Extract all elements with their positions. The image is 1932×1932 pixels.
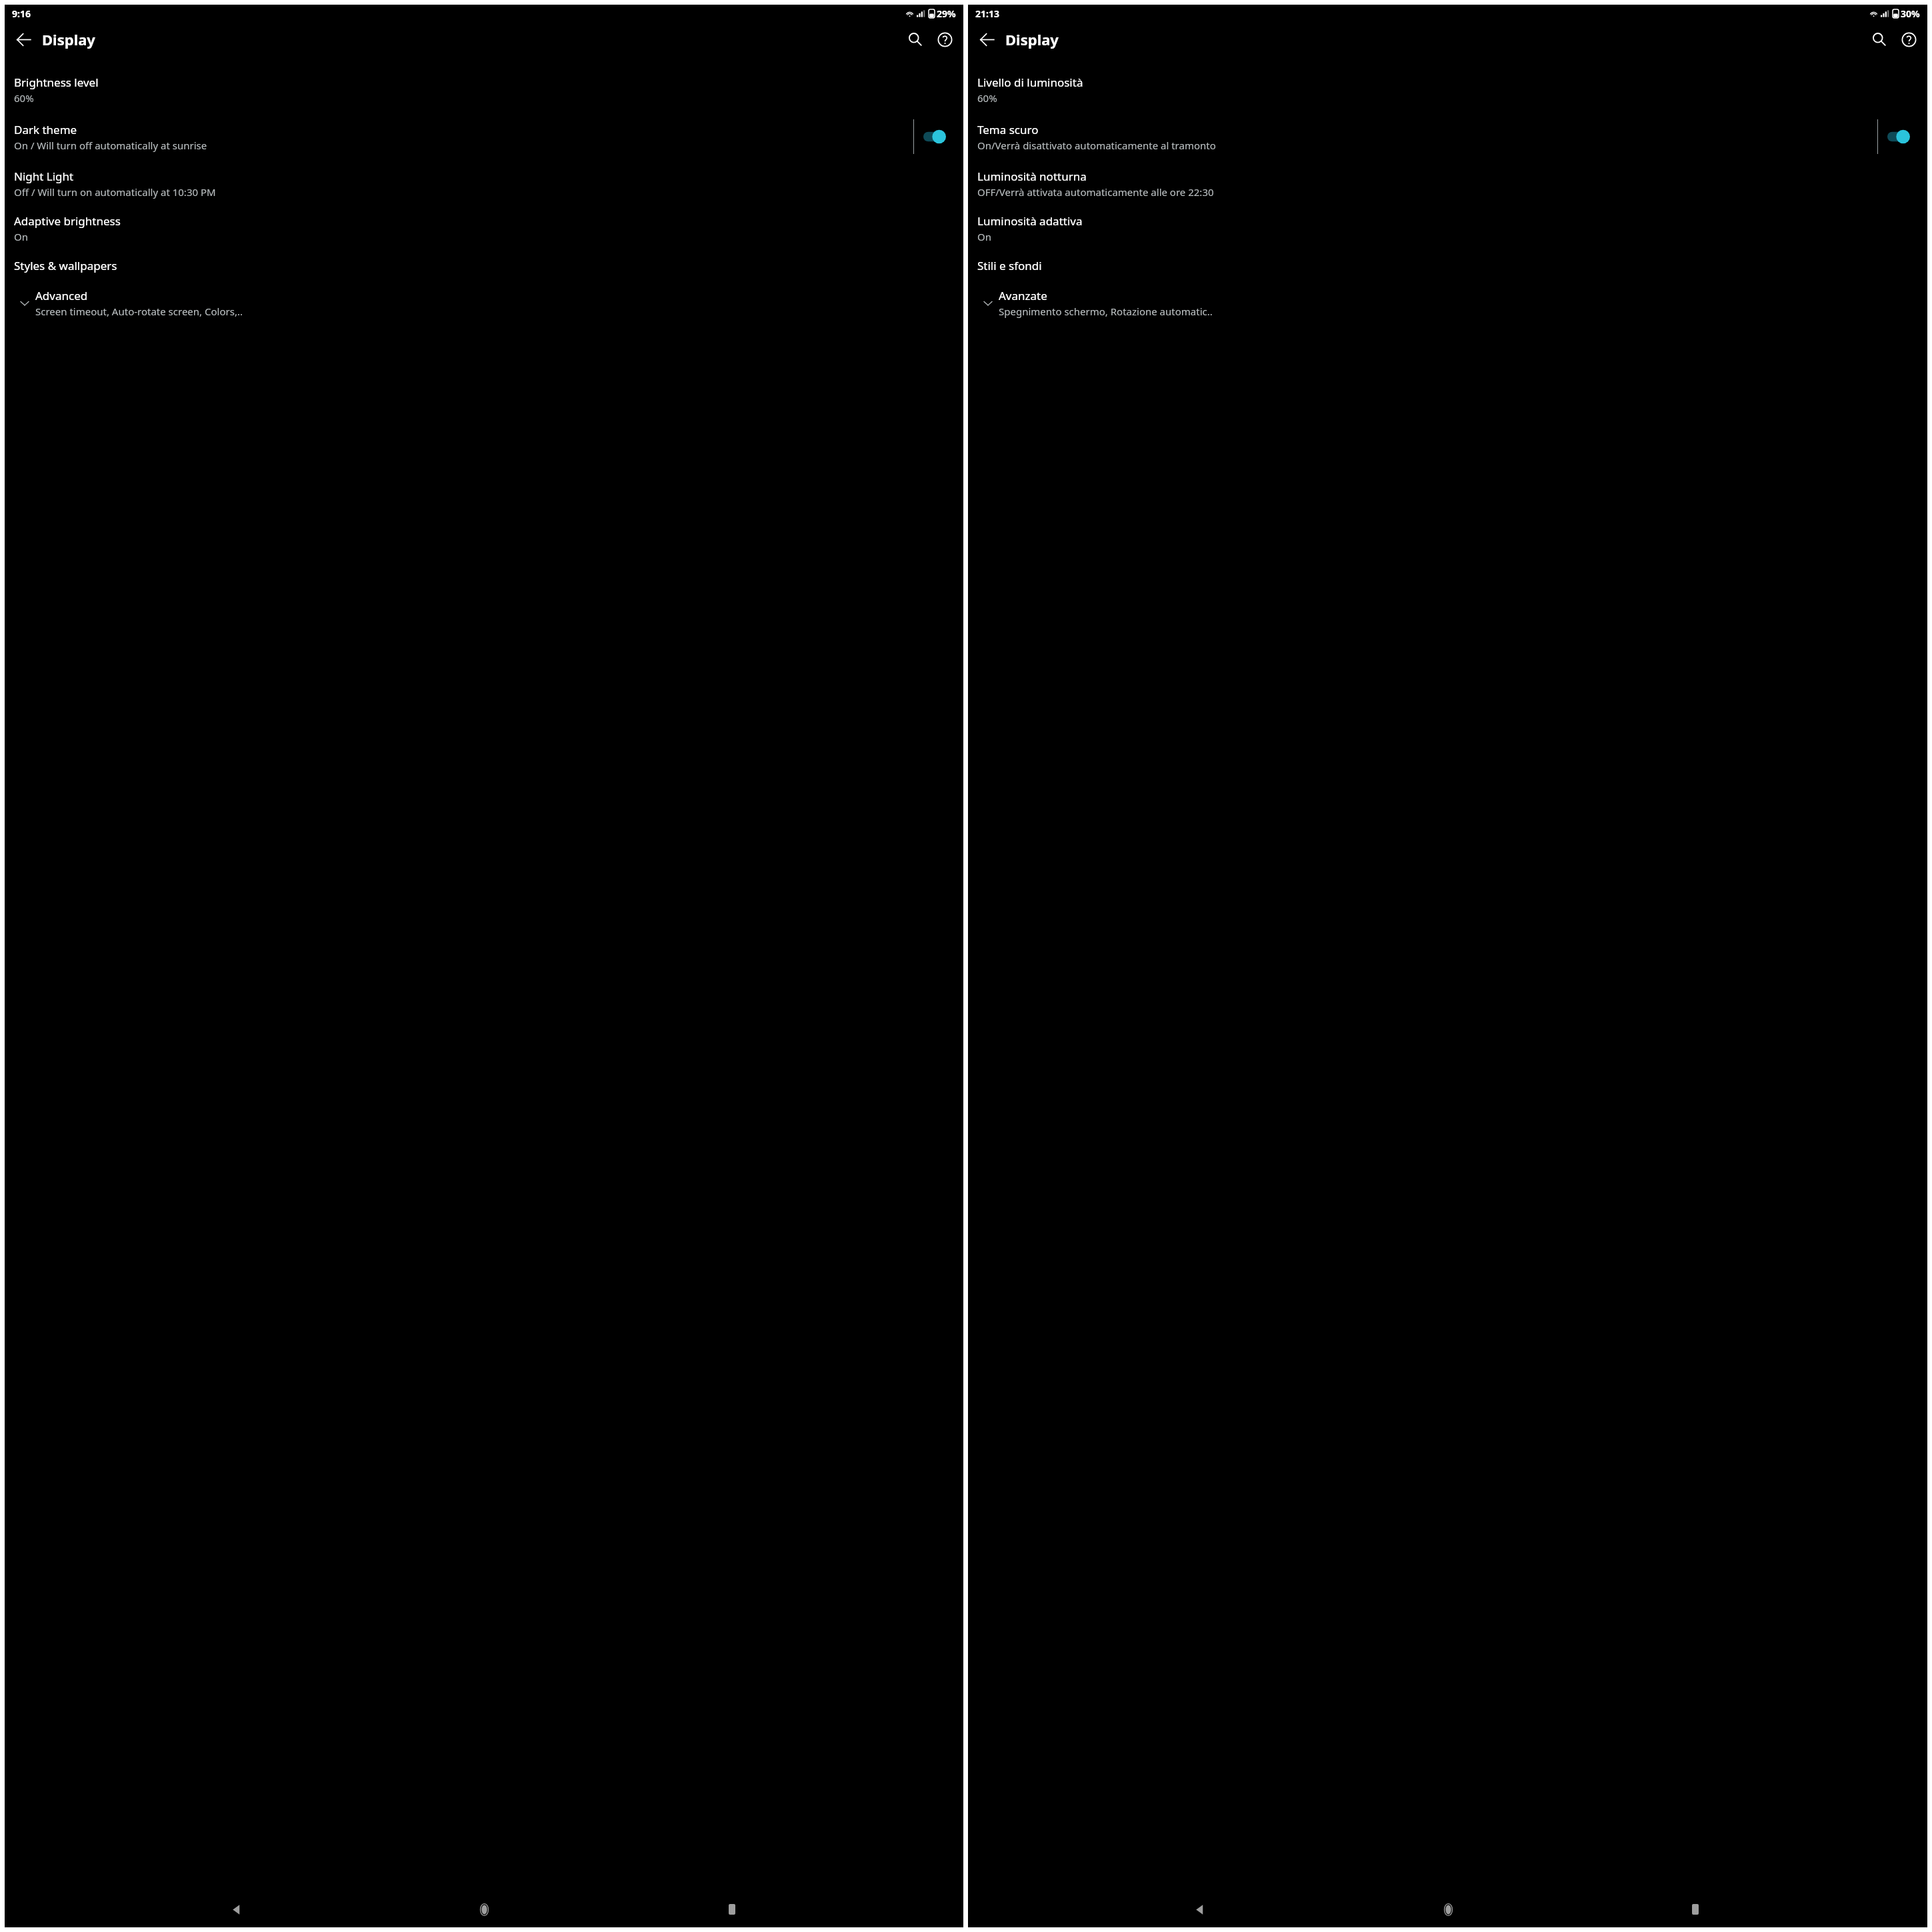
button[interactable]: Livello di luminosità [968,67,1927,112]
button[interactable]: Home [1432,1893,1464,1925]
button[interactable]: Styles & wallpapers [5,251,963,281]
staticText: Luminosità adattiva [977,213,1083,229]
staticText: Spegnimento schermo, Rotazione automatic… [999,305,1213,318]
staticText: On [14,230,28,243]
staticText: Tema scuro [977,122,1039,137]
staticText: Display [42,29,95,49]
button[interactable]: Night Light [5,161,963,206]
button[interactable]: Tema scuro [968,112,1927,161]
button[interactable]: Stili e sfondi [968,251,1927,281]
staticText: Styles & wallpapers [14,258,117,273]
staticText: 21:13 [975,7,999,20]
staticText: Advanced [35,288,88,303]
staticText: Stili e sfondi [977,258,1042,273]
staticText: 29% [937,7,956,20]
staticText: Livello di luminosità [977,75,1083,90]
staticText: Luminosità notturna [977,169,1087,184]
staticText: On / Will turn off automatically at sunr… [14,139,207,152]
button[interactable]: Home [468,1893,500,1925]
button[interactable]: Back [972,25,1001,54]
staticText: Dark theme [14,122,77,137]
button[interactable]: Search [1865,25,1894,54]
button[interactable]: Back [1184,1893,1216,1925]
staticText: Display [1005,29,1059,49]
button[interactable]: Dark theme [5,112,963,161]
staticText: 60% [14,91,34,105]
staticText: 30% [1901,7,1920,20]
button[interactable]: Recent apps [716,1893,748,1925]
staticText: Brightness level [14,75,99,90]
staticText: On [977,230,991,243]
button[interactable]: Back [9,25,38,54]
button[interactable]: Search [901,25,930,54]
button[interactable]: Dark theme toggle [1878,123,1919,151]
button[interactable]: Brightness level [5,67,963,112]
button[interactable]: Help [930,25,959,54]
staticText: 9:16 [12,7,31,20]
button[interactable]: Recent apps [1679,1893,1711,1925]
button[interactable]: Dark theme toggle [914,123,955,151]
button[interactable]: Adaptive brightness [5,206,963,251]
staticText: Adaptive brightness [14,213,121,229]
staticText: OFF/Verrà attivata automaticamente alle … [977,185,1214,199]
button[interactable]: Back [221,1893,253,1925]
button[interactable]: Avanzate [968,281,1927,325]
button[interactable]: Help [1894,25,1923,54]
staticText: Off / Will turn on automatically at 10:3… [14,185,216,199]
button[interactable]: Luminosità notturna [968,161,1927,206]
button[interactable]: Advanced [5,281,963,325]
staticText: 60% [977,91,997,105]
staticText: On/Verrà disattivato automaticamente al … [977,139,1216,152]
staticText: Night Light [14,169,74,184]
button[interactable]: Luminosità adattiva [968,206,1927,251]
staticText: Screen timeout, Auto-rotate screen, Colo… [35,305,243,318]
staticText: Avanzate [999,288,1047,303]
